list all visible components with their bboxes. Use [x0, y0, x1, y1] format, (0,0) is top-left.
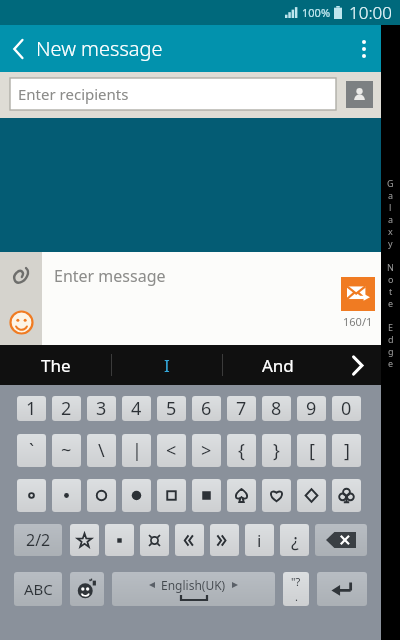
staticText: 7: [236, 396, 247, 421]
button[interactable]: [105, 524, 134, 556]
staticText: e: [388, 297, 394, 309]
button[interactable]: 0: [332, 396, 361, 421]
button[interactable]: And: [223, 345, 333, 385]
button[interactable]: 5: [157, 396, 186, 421]
staticText: `: [29, 438, 35, 463]
button[interactable]: Attach file: [0, 252, 42, 299]
button[interactable]: 3: [87, 396, 116, 421]
button[interactable]: [52, 479, 81, 512]
button[interactable]: Delete: [315, 524, 367, 556]
staticText: New message: [36, 35, 347, 62]
button[interactable]: [140, 524, 169, 556]
staticText: >: [201, 438, 212, 463]
button[interactable]: [227, 479, 256, 512]
button[interactable]: |: [122, 434, 151, 467]
button[interactable]: More options: [347, 25, 381, 72]
button[interactable]: 2: [52, 396, 81, 421]
staticText: d: [388, 333, 394, 345]
button[interactable]: [192, 479, 221, 512]
button[interactable]: [70, 524, 99, 556]
button[interactable]: Enter message: [54, 265, 166, 287]
button[interactable]: [122, 479, 151, 512]
staticText: Enter recipients: [18, 84, 129, 104]
staticText: g: [388, 345, 394, 357]
staticText: I: [164, 354, 170, 377]
button[interactable]: [297, 479, 326, 512]
staticText: 3: [96, 396, 107, 421]
button[interactable]: {: [227, 434, 256, 467]
button[interactable]: Enter recipients: [10, 78, 336, 110]
button[interactable]: Enter: [317, 572, 367, 606]
staticText: 9: [306, 396, 317, 421]
button[interactable]: 1: [17, 396, 46, 421]
button[interactable]: >: [192, 434, 221, 467]
button[interactable]: [17, 479, 46, 512]
staticText: a: [388, 213, 394, 225]
staticText: [: [309, 438, 315, 463]
staticText: o: [388, 273, 394, 285]
button[interactable]: 6: [192, 396, 221, 421]
staticText: 100%: [302, 5, 331, 20]
button[interactable]: [332, 479, 361, 512]
staticText: ABC: [24, 579, 53, 599]
staticText: "?: [291, 574, 301, 589]
button[interactable]: ]: [332, 434, 361, 467]
button[interactable]: i: [245, 524, 274, 556]
button[interactable]: 8: [262, 396, 291, 421]
button[interactable]: 7: [227, 396, 256, 421]
staticText: .: [295, 589, 298, 604]
button[interactable]: ¿: [280, 524, 309, 556]
staticText: 8: [271, 396, 282, 421]
button[interactable]: [157, 479, 186, 512]
staticText: 0: [341, 396, 352, 421]
staticText: ~: [61, 438, 72, 463]
button[interactable]: Insert emoticon: [0, 299, 42, 345]
staticText: 160/1: [343, 314, 373, 329]
staticText: ¿: [291, 528, 299, 553]
staticText: {: [238, 438, 245, 463]
staticText: 4: [131, 396, 142, 421]
staticText: t: [389, 285, 393, 297]
button[interactable]: \: [87, 434, 116, 467]
button[interactable]: "?: [283, 572, 309, 606]
button[interactable]: [87, 479, 116, 512]
button[interactable]: Send message: [341, 277, 375, 311]
staticText: ]: [344, 438, 350, 463]
button[interactable]: More suggestions: [333, 345, 381, 385]
staticText: <: [166, 438, 177, 463]
staticText: English(UK): [161, 577, 226, 593]
button[interactable]: ABC: [14, 572, 62, 606]
button[interactable]: Emoji and voice input: [70, 572, 104, 606]
button[interactable]: `: [17, 434, 46, 467]
button[interactable]: Space: [112, 572, 275, 606]
button[interactable]: [210, 524, 239, 556]
staticText: The: [41, 354, 71, 377]
button[interactable]: Navigate up: [0, 25, 36, 72]
button[interactable]: 2/2: [14, 524, 62, 556]
button[interactable]: 9: [297, 396, 326, 421]
staticText: l: [389, 201, 392, 213]
staticText: G: [387, 177, 394, 189]
button[interactable]: The: [0, 345, 111, 385]
button[interactable]: [: [297, 434, 326, 467]
button[interactable]: ~: [52, 434, 81, 467]
button[interactable]: [175, 524, 204, 556]
staticText: i: [257, 529, 262, 552]
staticText: e: [388, 357, 394, 369]
staticText: And: [262, 354, 294, 377]
staticText: 1: [26, 396, 37, 421]
button[interactable]: I: [112, 345, 222, 385]
staticText: 10:00: [349, 1, 392, 24]
staticText: E: [388, 321, 394, 333]
button[interactable]: }: [262, 434, 291, 467]
staticText: 5: [166, 396, 177, 421]
staticText: 2/2: [26, 529, 51, 551]
button[interactable]: Add recipients from contacts: [346, 81, 373, 108]
button[interactable]: [262, 479, 291, 512]
staticText: |: [132, 438, 142, 463]
staticText: \: [98, 438, 105, 463]
button[interactable]: <: [157, 434, 186, 467]
button[interactable]: 4: [122, 396, 151, 421]
